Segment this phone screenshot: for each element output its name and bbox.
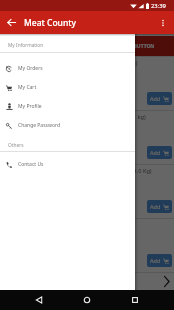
button[interactable]: Change Password [0, 116, 135, 135]
staticText: Contact Us [18, 161, 44, 168]
staticText: Mutton Biryani Cut Premium Quality Frsh … [8, 113, 146, 121]
button[interactable]: Add [147, 146, 172, 159]
button[interactable]: Back [0, 11, 23, 34]
staticText: Meat County [24, 17, 77, 29]
button[interactable]: Add [147, 92, 172, 105]
staticText: My Profile [18, 103, 42, 110]
staticText: My Orders [18, 65, 43, 72]
button[interactable]: CONTINUE SHOPPING OR PROCEED TO ORDER BU… [0, 36, 174, 56]
staticText: Fresh Boneless Chicken Breast Fillets Pa… [8, 167, 152, 175]
button[interactable]: My Profile [0, 97, 135, 116]
button[interactable]: Contact Us [0, 155, 135, 174]
button[interactable]: Back [29, 290, 49, 310]
staticText: Add [150, 203, 161, 211]
staticText: My Cart [18, 84, 37, 91]
button[interactable]: Home [77, 290, 97, 310]
staticText: 23:39 [151, 2, 166, 10]
staticText: Country Chicken Curry Cut With Skin Medi… [8, 59, 138, 67]
button[interactable]: Next [0, 273, 174, 293]
staticText: My Information [8, 42, 44, 49]
button[interactable]: More options [151, 11, 174, 34]
button[interactable]: My Cart [0, 78, 135, 97]
staticText: Change Password [18, 122, 60, 129]
button[interactable]: Recent apps [125, 290, 145, 310]
button[interactable]: My Orders [0, 59, 135, 78]
staticText: Add [150, 257, 161, 265]
staticText: Others [8, 142, 24, 149]
staticText: Add [150, 95, 161, 103]
staticText: Add [150, 149, 161, 157]
staticText: CONTINUE SHOPPING OR PROCEED TO ORDER BU… [19, 43, 155, 50]
button[interactable]: Add [147, 200, 172, 213]
button[interactable]: Add [147, 254, 172, 267]
